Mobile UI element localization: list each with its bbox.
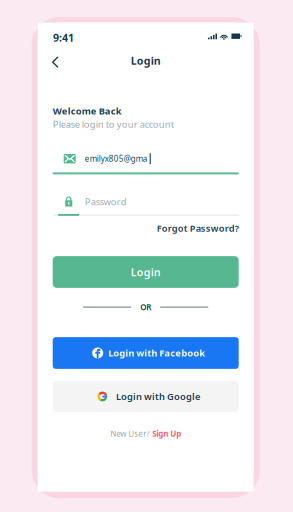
staticText: Login with Google [116, 390, 200, 403]
staticText: New User? [110, 428, 149, 439]
staticText: Forgot Password? [157, 222, 239, 234]
staticText: 9:41 [53, 30, 74, 45]
staticText: Password [85, 195, 127, 208]
staticText: Login with Facebook [108, 347, 205, 359]
button[interactable]: Login with Facebook [53, 337, 239, 369]
button[interactable]: Login [53, 256, 239, 288]
staticText: Please login to your account [53, 118, 174, 130]
staticText: Welcome Back [53, 105, 122, 117]
staticText: Login [131, 53, 161, 68]
button[interactable]: Forgot Password? [53, 221, 239, 235]
staticText: OR [140, 302, 151, 312]
staticText: Login [131, 265, 161, 279]
button[interactable]: Back [45, 49, 66, 75]
button[interactable]: New User? [53, 427, 239, 441]
button[interactable]: Login with Google [53, 381, 239, 412]
staticText: Sign Up [152, 428, 181, 439]
staticText: emilyx805@gma [85, 153, 147, 164]
